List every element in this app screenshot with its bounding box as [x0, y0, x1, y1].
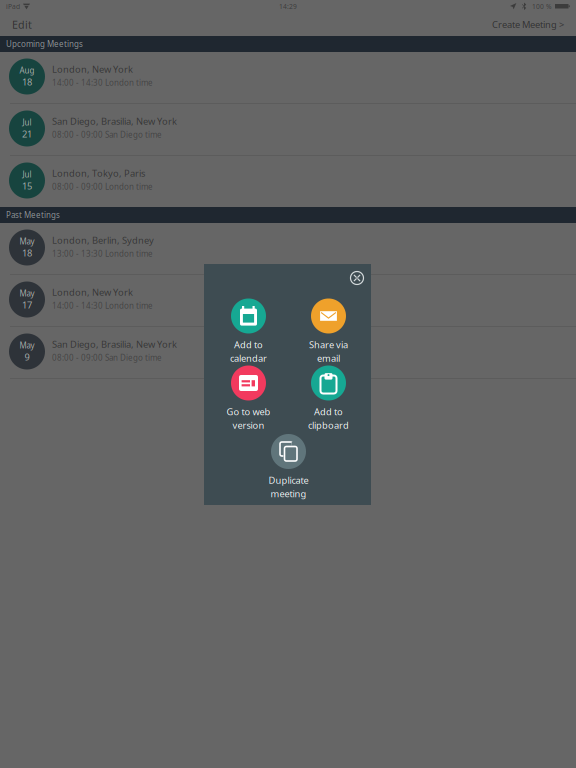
staticText: Upcoming Meetings	[6, 39, 83, 49]
button[interactable]: Aug	[0, 52, 576, 103]
staticText: May	[19, 340, 34, 351]
staticText: 08:00 - 09:00 San Diego time	[52, 129, 162, 140]
staticText: London, New York	[52, 63, 133, 75]
staticText: Edit	[12, 17, 32, 32]
staticText: meeting	[270, 487, 306, 500]
button[interactable]: May	[0, 223, 576, 274]
staticText: clipboard	[308, 419, 349, 431]
staticText: 08:00 - 09:00 San Diego time	[52, 352, 162, 363]
button[interactable]: Close	[346, 267, 368, 289]
staticText: Jul	[22, 169, 31, 180]
staticText: 15	[22, 180, 32, 192]
staticText: 13:00 - 13:30 London time	[52, 248, 153, 259]
staticText: 18	[22, 76, 32, 88]
staticText: London, Tokyo, Paris	[52, 167, 145, 179]
staticText: Go to web	[226, 405, 270, 418]
staticText: May	[19, 288, 34, 299]
staticText: calendar	[230, 352, 267, 364]
staticText: Create Meeting >	[492, 18, 564, 31]
staticText: London, New York	[52, 286, 133, 298]
button[interactable]: May	[0, 327, 576, 378]
button[interactable]: Jul	[0, 104, 576, 155]
staticText: 100 %	[532, 2, 552, 11]
button[interactable]: Go to web	[208, 365, 288, 433]
staticText: email	[317, 352, 340, 364]
staticText: 17	[22, 299, 32, 311]
staticText: Duplicate	[268, 474, 308, 486]
button[interactable]: Duplicate	[248, 434, 328, 502]
staticText: 18	[22, 247, 32, 259]
button[interactable]: Add to	[208, 298, 288, 366]
button[interactable]: Share via	[288, 298, 368, 366]
staticText: Share via	[309, 338, 348, 351]
staticText: version	[232, 419, 264, 431]
staticText: 21	[22, 128, 32, 140]
staticText: 9	[24, 351, 29, 363]
staticText: London, Berlin, Sydney	[52, 234, 154, 246]
button[interactable]: Edit	[0, 13, 44, 36]
staticText: 08:00 - 09:00 London time	[52, 181, 153, 192]
staticText: May	[19, 236, 34, 247]
staticText: 14:00 - 14:30 London time	[52, 300, 153, 311]
button[interactable]: Create Meeting >	[480, 13, 576, 36]
staticText: iPad	[6, 2, 20, 11]
staticText: 14:29	[279, 2, 297, 11]
staticText: Past Meetings	[6, 210, 60, 220]
staticText: 14:00 - 14:30 London time	[52, 77, 153, 88]
staticText: San Diego, Brasilia, New York	[52, 338, 177, 350]
staticText: Aug	[19, 65, 34, 76]
staticText: Jul	[22, 117, 31, 128]
staticText: Add to	[314, 405, 343, 418]
button[interactable]: Add to	[288, 365, 368, 433]
button[interactable]: Jul	[0, 156, 576, 207]
staticText: San Diego, Brasilia, New York	[52, 115, 177, 127]
staticText: Add to	[234, 338, 263, 351]
button[interactable]: May	[0, 275, 576, 326]
